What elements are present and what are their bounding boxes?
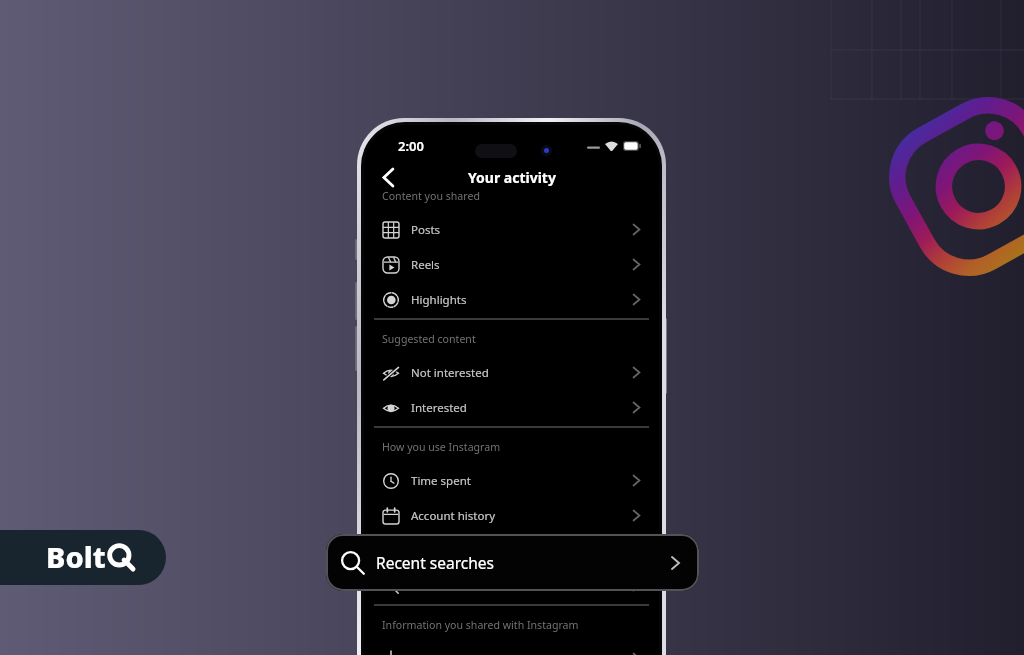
- staticText: Time spent: [411, 473, 471, 489]
- staticText: Not interested: [411, 365, 489, 381]
- staticText: Recent searches: [411, 578, 499, 594]
- button[interactable]: Interested: [364, 390, 659, 425]
- button[interactable]: Highlights: [364, 282, 659, 317]
- staticText: Highlights: [411, 292, 467, 308]
- staticText: Content you shared: [382, 189, 480, 203]
- button[interactable]: Account history: [364, 498, 659, 533]
- button[interactable]: Reels: [364, 247, 659, 282]
- staticText: 2:00: [398, 137, 424, 155]
- button[interactable]: Ads topics: [364, 533, 659, 568]
- button[interactable]: Not interested: [364, 355, 659, 390]
- staticText: Information you shared with Instagram: [382, 618, 579, 632]
- staticText: Posts: [411, 222, 441, 238]
- button[interactable]: Time spent: [364, 463, 659, 498]
- button[interactable]: Posts: [364, 212, 659, 247]
- staticText: Reels: [411, 257, 440, 273]
- staticText: Bolt: [46, 537, 106, 576]
- button[interactable]: Recent searches: [326, 534, 699, 591]
- staticText: Suggested content: [382, 332, 476, 346]
- button[interactable]: Back: [374, 163, 402, 191]
- staticText: Your activity: [468, 168, 556, 187]
- button[interactable]: Bolt: [0, 530, 166, 585]
- staticText: Account history: [411, 508, 496, 524]
- staticText: Interested: [411, 400, 467, 416]
- button[interactable]: Recent searches: [364, 568, 659, 603]
- staticText: How you use Instagram: [382, 440, 501, 454]
- button[interactable]: Your information and permissions: [364, 641, 659, 655]
- staticText: Recent searches: [376, 552, 494, 573]
- staticText: Ads topics: [411, 543, 467, 559]
